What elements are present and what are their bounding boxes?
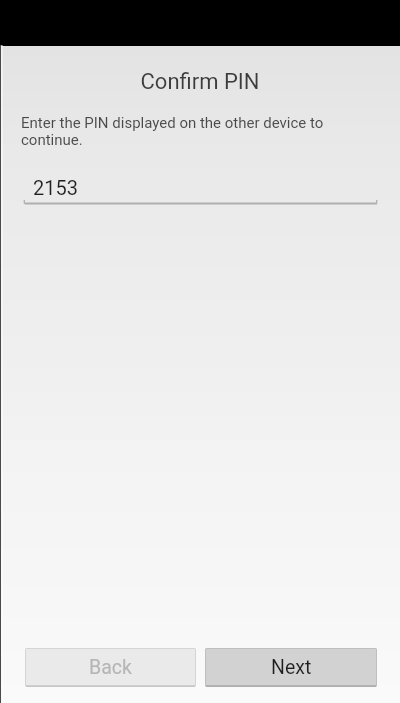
button[interactable]: PIN entry field [24, 170, 377, 205]
staticText: Next [271, 656, 312, 679]
staticText: Confirm PIN [0, 69, 400, 95]
staticText: 2153 [33, 176, 78, 199]
staticText: Enter the PIN displayed on the other dev… [21, 114, 329, 148]
button[interactable]: Next [205, 648, 377, 687]
button[interactable]: Back [25, 648, 196, 687]
staticText: Back [89, 656, 132, 679]
